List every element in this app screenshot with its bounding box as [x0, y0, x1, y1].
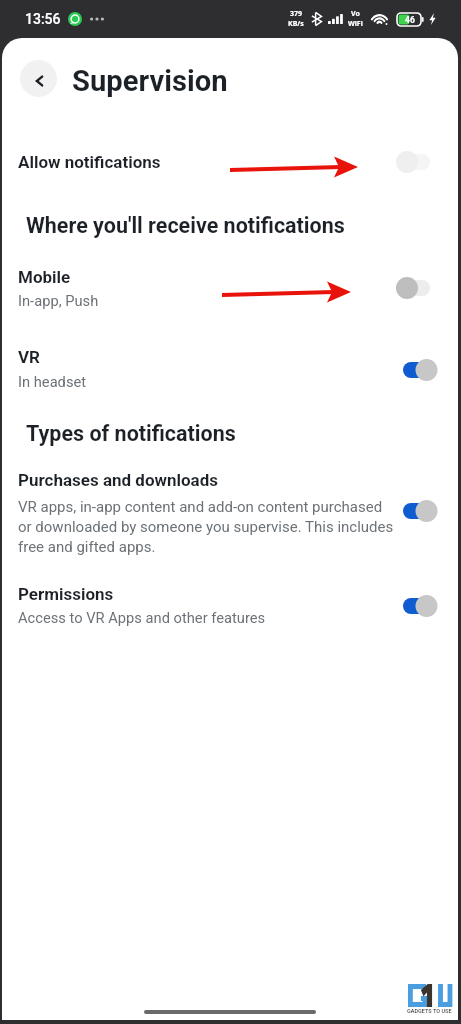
- button[interactable]: Back: [20, 60, 57, 97]
- button[interactable]: Purchases and downloads: [18, 470, 218, 490]
- staticText: KB/s: [288, 19, 304, 29]
- button[interactable]: Allow notifications: [18, 152, 161, 172]
- button[interactable]: Toggle: [395, 496, 443, 526]
- button[interactable]: Permissions: [18, 584, 114, 604]
- button[interactable]: VR: [18, 347, 40, 367]
- staticText: GADGETS TO USE: [407, 1008, 452, 1014]
- staticText: Where you'll receive notifications: [26, 213, 345, 238]
- button[interactable]: Mobile: [18, 267, 71, 287]
- staticText: Supervision: [72, 64, 228, 98]
- staticText: In headset: [18, 373, 87, 390]
- staticText: 46: [405, 15, 415, 25]
- staticText: 379: [290, 9, 303, 19]
- staticText: WiFi: [348, 19, 363, 29]
- staticText: 13:56: [25, 11, 61, 27]
- button[interactable]: Toggle: [395, 591, 443, 621]
- staticText: Vo: [351, 9, 360, 19]
- button[interactable]: Toggle: [395, 147, 443, 177]
- button[interactable]: Toggle: [395, 273, 443, 303]
- staticText: Access to VR Apps and other features: [18, 609, 266, 626]
- staticText: VR apps, in-app content and add-on conte…: [18, 498, 418, 556]
- staticText: Types of notifications: [26, 421, 236, 446]
- button[interactable]: Toggle: [395, 355, 443, 385]
- staticText: In-app, Push: [18, 292, 99, 309]
